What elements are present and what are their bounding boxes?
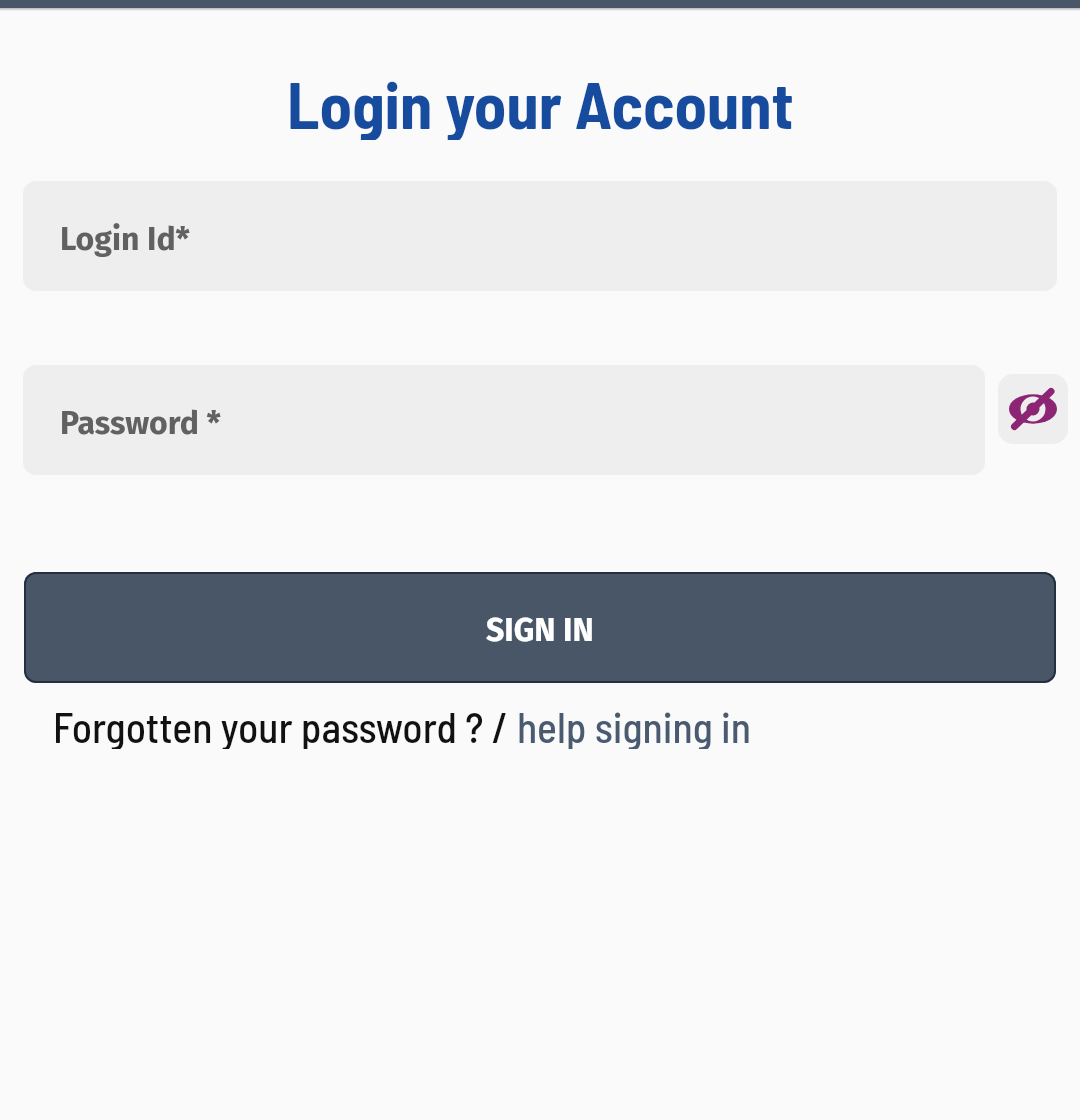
button[interactable]: Login Id* bbox=[23, 181, 1057, 291]
staticText: Login Id* bbox=[60, 220, 190, 258]
button[interactable]: SIGN IN bbox=[24, 572, 1056, 683]
staticText: Forgotten your password ? / bbox=[53, 701, 517, 749]
staticText: SIGN IN bbox=[486, 611, 594, 649]
button[interactable]: help signing in bbox=[517, 701, 751, 749]
button[interactable] bbox=[998, 374, 1068, 444]
button[interactable]: Password * bbox=[23, 365, 985, 475]
staticText: Login your Account bbox=[287, 64, 794, 140]
staticText: Password * bbox=[60, 404, 221, 442]
